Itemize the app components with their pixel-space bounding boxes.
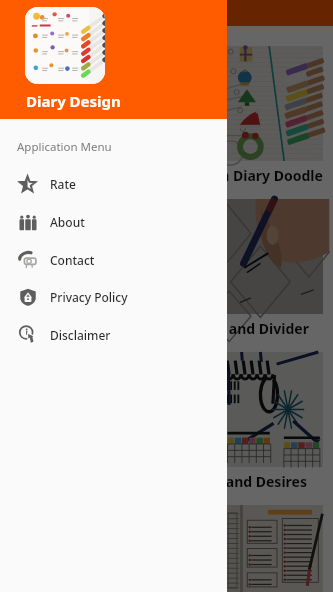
button[interactable]: Privacy Policy	[0, 278, 227, 316]
staticText: January Goals Dreams Wishes and Desires	[16, 472, 307, 491]
button[interactable]: Disclaimer	[0, 316, 227, 354]
staticText: Disclaimer	[50, 327, 111, 343]
button[interactable]: January Goals Dreams Wishes and Desires	[10, 352, 323, 505]
button[interactable]: About	[0, 203, 227, 241]
button[interactable]: Daily Planner Diary Checklist Ideas	[10, 505, 323, 592]
button[interactable]: Creative Christmas Decoration Diary Dood…	[10, 46, 323, 199]
staticText: Rate	[50, 176, 76, 192]
staticText: Creative Christmas Decoration Diary Dood…	[16, 166, 323, 185]
staticText: About	[50, 214, 85, 230]
button[interactable]: Contact	[0, 241, 227, 279]
staticText: Contact	[50, 252, 95, 268]
staticText: Handmade Washi Tape Border and Divider	[16, 319, 309, 338]
staticText: Diary Design	[26, 91, 121, 111]
staticText: Application Menu	[17, 139, 112, 155]
button[interactable]: Handmade Washi Tape Border and Divider	[10, 199, 323, 352]
staticText: Privacy Policy	[50, 289, 128, 305]
button[interactable]: Rate	[0, 165, 227, 203]
